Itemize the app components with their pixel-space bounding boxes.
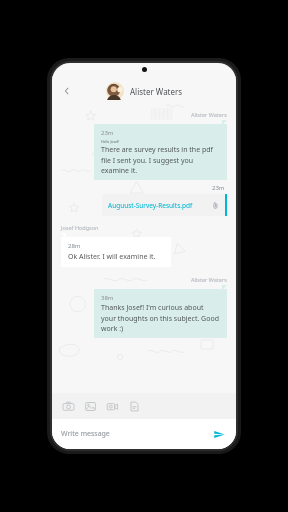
staticText: Alister Waters	[130, 86, 183, 97]
button[interactable]: Alister Waters	[106, 82, 183, 100]
staticText: 23m	[101, 129, 114, 137]
button[interactable]: 23m	[94, 120, 227, 180]
staticText: Alister Waters	[191, 111, 227, 118]
button[interactable]: 28m	[61, 233, 171, 267]
staticText: Auguust-Survey-Results.pdf	[108, 201, 209, 210]
staticText: Thanks Josef! I'm curious about your tho…	[101, 303, 220, 333]
staticText: Alister Waters	[191, 276, 227, 283]
button[interactable]: Send	[211, 426, 227, 442]
staticText: 28m	[68, 242, 81, 250]
staticText: There are survey results in the pdf file…	[101, 145, 220, 175]
button[interactable]: Photo	[82, 398, 98, 414]
button[interactable]: Document	[126, 398, 142, 414]
button[interactable]: 38m	[94, 285, 227, 338]
staticText: 38m	[101, 294, 114, 302]
button[interactable]: Camera	[60, 398, 76, 414]
staticText: Write message	[61, 429, 211, 439]
button[interactable]: Auguust-Survey-Results.pdf	[102, 194, 227, 216]
staticText: Josef Hodgson	[61, 224, 99, 231]
staticText: Ok Alister. I will examine it.	[68, 252, 156, 262]
button[interactable]: Back	[58, 82, 76, 100]
staticText: 23m	[212, 184, 225, 192]
button[interactable]: Video	[104, 398, 120, 414]
button[interactable]: Write message	[61, 419, 227, 449]
staticText: Hello Josef!	[101, 139, 120, 144]
